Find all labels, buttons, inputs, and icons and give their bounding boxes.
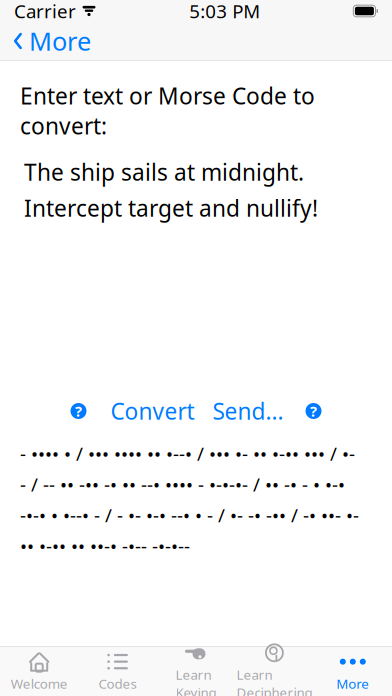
staticText: -•-• • •--• - / - •- •-• --• • - / •- -•… [20, 503, 359, 527]
button[interactable]: Help [301, 399, 325, 423]
button[interactable]: Convert [110, 392, 194, 430]
staticText: Learn Deciphering [236, 666, 312, 696]
staticText: More [336, 675, 369, 692]
staticText: - •••• • / ••• •••• •• •--• / ••• •- •• … [20, 441, 355, 466]
button[interactable]: Help [66, 399, 90, 423]
staticText: Welcome [11, 675, 68, 692]
staticText: Send... [212, 396, 283, 426]
button[interactable]: Welcome [0, 647, 78, 696]
staticText: 5:03 PM [189, 0, 260, 23]
staticText: Convert [110, 396, 194, 426]
staticText: Learn Keying [175, 666, 216, 696]
staticText: The ship sails at midnight. Intercept ta… [24, 157, 318, 223]
button[interactable]: More [0, 22, 101, 60]
staticText: ? [75, 401, 82, 421]
staticText: Codes [99, 675, 137, 692]
button[interactable]: Codes [78, 647, 157, 696]
staticText: •• •-•• •• ••-• -•-- -•-•-- [20, 533, 190, 558]
staticText: Enter text or Morse Code to convert: [20, 81, 315, 141]
staticText: Carrier [14, 0, 76, 23]
button[interactable]: More [314, 647, 392, 696]
button[interactable]: Send... [212, 392, 283, 430]
staticText: More [29, 24, 91, 58]
staticText: ? [310, 401, 317, 421]
button[interactable]: Learn Keying [157, 647, 235, 696]
button[interactable]: Learn Deciphering [235, 647, 314, 696]
staticText: - / -- •• -•• -• •• --• •••• - •-•-•- / … [20, 472, 345, 497]
